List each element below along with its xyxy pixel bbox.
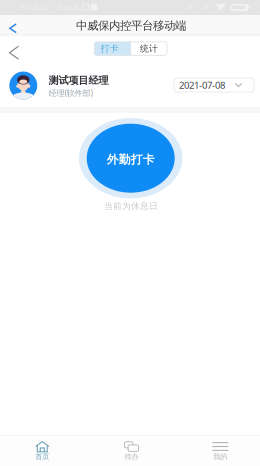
staticText: ıl [204, 3, 208, 12]
staticText: 中威保内控平台移动端 [76, 19, 186, 33]
staticText: 待办 [124, 452, 138, 461]
button[interactable]: Back [3, 41, 24, 64]
staticText: 统计 [140, 43, 158, 54]
staticText: 当前为休息日 [104, 200, 158, 212]
button[interactable]: 外勤打卡 [79, 118, 182, 198]
staticText: 打卡 [101, 43, 119, 54]
staticText: 我的 [213, 452, 227, 461]
button[interactable]: 2021-07-08 [174, 78, 254, 92]
button[interactable]: Back [3, 18, 23, 38]
staticText: 经理(软件部) [48, 87, 92, 98]
staticText: ıl [188, 3, 192, 12]
button[interactable]: 首页 [0, 435, 85, 465]
staticText: 首页 [35, 452, 49, 461]
staticText: 外勤打卡 [107, 152, 155, 167]
button[interactable]: 我的 [177, 435, 260, 465]
button[interactable]: 待办 [88, 435, 174, 465]
button[interactable]: 打卡 [94, 42, 130, 55]
button[interactable]: 统计 [131, 42, 167, 55]
staticText: 测试项目经理 [48, 74, 108, 87]
staticText: 2021-07-08 [179, 78, 225, 92]
